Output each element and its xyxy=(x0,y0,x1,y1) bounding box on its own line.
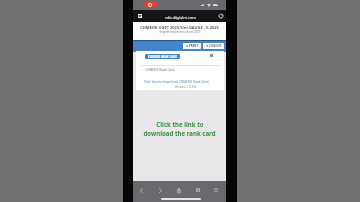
button[interactable]: Back xyxy=(135,184,147,196)
button[interactable]: Reload xyxy=(218,13,224,19)
staticText: Click the link to xyxy=(156,120,204,128)
staticText: (Engineering Entrance Exam 2025) xyxy=(159,30,201,34)
staticText: PRINT xyxy=(189,44,199,48)
staticText: Click here to download COMEDK Rank Card. xyxy=(144,80,210,84)
staticText: download the rank card xyxy=(143,129,216,137)
button[interactable]: Share xyxy=(173,184,185,196)
staticText: COMEDK UGET 2025/Uni-GAUGE - E-2025 xyxy=(140,25,219,30)
button[interactable]: Bookmarks xyxy=(192,184,204,196)
button[interactable]: PRINT xyxy=(183,43,201,49)
button[interactable]: COMEDK RANK CARD xyxy=(145,54,180,59)
button[interactable]: Forward xyxy=(154,184,166,196)
staticText: cdn.digialm.com xyxy=(165,15,197,20)
staticText: LOGOUT xyxy=(209,44,222,48)
button[interactable]: LOGOUT xyxy=(203,43,224,49)
button[interactable]: Tab switcher xyxy=(210,184,222,196)
button[interactable]: Options xyxy=(208,52,215,59)
staticText: COMEDK RANK CARD xyxy=(148,55,178,59)
button[interactable]: Site information xyxy=(137,13,143,19)
staticText: Version 1.0.0.0 xyxy=(175,85,197,89)
staticText: COMEDK Rank Card xyxy=(145,68,175,72)
